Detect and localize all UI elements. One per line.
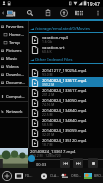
staticText: vacation.mp4 bbox=[42, 35, 68, 41]
staticText: 1.6 Gb bbox=[42, 39, 52, 43]
staticText: CLA... bbox=[50, 173, 59, 178]
button[interactable]: More options bbox=[93, 8, 102, 18]
staticText: 74.16 M bbox=[42, 102, 55, 106]
button[interactable]: Next bbox=[73, 158, 83, 168]
button[interactable]: vacation.mp4 bbox=[29, 34, 103, 44]
staticText: BRO... bbox=[94, 173, 103, 178]
staticText: Docume... bbox=[6, 80, 26, 86]
button[interactable]: New file bbox=[43, 8, 52, 18]
button[interactable]: Previous bbox=[60, 158, 70, 168]
button[interactable]: Network bbox=[0, 107, 29, 115]
staticText: 20140824_134840.mp4 bbox=[42, 118, 87, 124]
staticText: 20140824_133617.mp4 bbox=[42, 78, 87, 84]
button[interactable]: Stop bbox=[88, 158, 98, 168]
button[interactable]: Home... bbox=[0, 30, 29, 38]
staticText: 350.2 M bbox=[42, 82, 55, 86]
staticText: Pictures bbox=[6, 48, 22, 54]
button[interactable]: Up one level bbox=[59, 8, 68, 18]
button[interactable]: 20140824_133617.mp4 bbox=[29, 77, 103, 87]
button[interactable]: FIL... bbox=[14, 170, 33, 181]
button[interactable]: 20140824_134840.mp4 bbox=[29, 107, 103, 117]
staticText: Favorites bbox=[6, 24, 24, 30]
button[interactable]: 20140824_134050.mp4 bbox=[29, 97, 103, 107]
staticText: 20140824_133617.mp4 bbox=[30, 149, 76, 155]
staticText: 20140824_135059.mp4 bbox=[42, 128, 87, 134]
staticText: Music bbox=[6, 56, 18, 62]
staticText: 19:47 bbox=[87, 1, 100, 8]
staticText: 93.0 M bbox=[42, 72, 53, 76]
button[interactable]: Docume... bbox=[0, 78, 29, 86]
staticText: Network bbox=[6, 109, 23, 115]
button[interactable]: Back bbox=[0, 8, 5, 18]
button[interactable]: 20140824_135059.mp4 bbox=[29, 127, 103, 137]
staticText: /storage/emulated/0/Movies bbox=[35, 26, 90, 32]
button[interactable]: CLA... bbox=[39, 170, 59, 181]
staticText: 20140824_133617.mp4 bbox=[42, 88, 87, 94]
button[interactable]: Search bbox=[25, 8, 34, 18]
staticText: 20140824_134840.mp4 bbox=[42, 108, 87, 114]
staticText: 20141217_190254.mp4 bbox=[42, 68, 87, 74]
staticText: 350.2 M 1280x720 bbox=[30, 153, 61, 158]
button[interactable]: Add bbox=[1, 170, 12, 181]
button[interactable]: Favorites bbox=[0, 22, 29, 30]
staticText: 18.7 M bbox=[42, 142, 53, 146]
staticText: Comput... bbox=[6, 94, 25, 100]
button[interactable]: Downlo... bbox=[0, 70, 29, 78]
staticText: 20140824_134050.mp4 bbox=[42, 98, 87, 104]
button[interactable]: Computer bbox=[5, 8, 16, 18]
staticText: Other Indexed Files bbox=[35, 57, 73, 63]
button[interactable]: Temp bbox=[0, 38, 29, 46]
staticText: ORO... bbox=[71, 173, 81, 178]
staticText: FIL... bbox=[25, 173, 33, 178]
staticText: Home... bbox=[9, 32, 24, 38]
button[interactable]: 20140824_135120.mp4 bbox=[29, 137, 103, 147]
staticText: 20140824_135120.mp4 bbox=[42, 138, 87, 144]
staticText: vacation.srt bbox=[42, 45, 65, 51]
button[interactable]: 20140824_134840.mp4 bbox=[29, 117, 103, 127]
button[interactable]: 20141217_190254.mp4 bbox=[29, 67, 103, 77]
staticText: Videos bbox=[6, 64, 19, 70]
button[interactable]: Music bbox=[0, 54, 29, 62]
button[interactable]: 20140824_133617.mp4 bbox=[29, 87, 103, 97]
staticText: 201.2 M bbox=[42, 92, 55, 96]
button[interactable]: Comput... bbox=[0, 92, 29, 100]
staticText: 32.01 M bbox=[42, 132, 55, 136]
staticText: 22.5 M bbox=[42, 112, 53, 116]
button[interactable]: BRO... bbox=[83, 170, 103, 181]
button[interactable]: Videos bbox=[0, 62, 29, 70]
button[interactable]: View mode bbox=[74, 8, 83, 18]
staticText: 00:03 bbox=[36, 162, 47, 167]
staticText: 58.5 M bbox=[42, 122, 53, 126]
button[interactable]: vacation.srt bbox=[29, 44, 103, 54]
button[interactable]: Pictures bbox=[0, 46, 29, 54]
staticText: Temp bbox=[9, 40, 20, 46]
staticText: 60.6 K bbox=[42, 49, 52, 53]
button[interactable]: ORO... bbox=[60, 170, 81, 181]
staticText: Downlo... bbox=[6, 72, 24, 78]
